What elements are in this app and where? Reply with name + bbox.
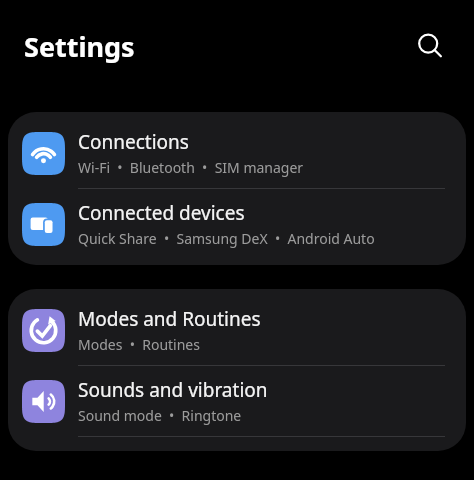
staticText: Sound mode • Ringtone bbox=[78, 406, 242, 425]
button[interactable]: Modes and Routines bbox=[8, 295, 466, 365]
button[interactable]: Sounds and vibration bbox=[8, 366, 466, 436]
staticText: Modes • Routines bbox=[78, 335, 200, 354]
staticText: Settings bbox=[24, 28, 135, 65]
staticText: Modes and Routines bbox=[78, 306, 261, 332]
staticText: Connections bbox=[78, 129, 189, 155]
staticText: Quick Share • Samsung DeX • Android Auto bbox=[78, 229, 375, 248]
button[interactable]: Connections bbox=[8, 118, 466, 188]
staticText: Connected devices bbox=[78, 200, 245, 226]
staticText: Sounds and vibration bbox=[78, 377, 268, 403]
staticText: Wi-Fi • Bluetooth • SIM manager bbox=[78, 158, 304, 177]
button[interactable]: Search bbox=[408, 24, 452, 68]
button[interactable]: Connected devices bbox=[8, 189, 466, 259]
